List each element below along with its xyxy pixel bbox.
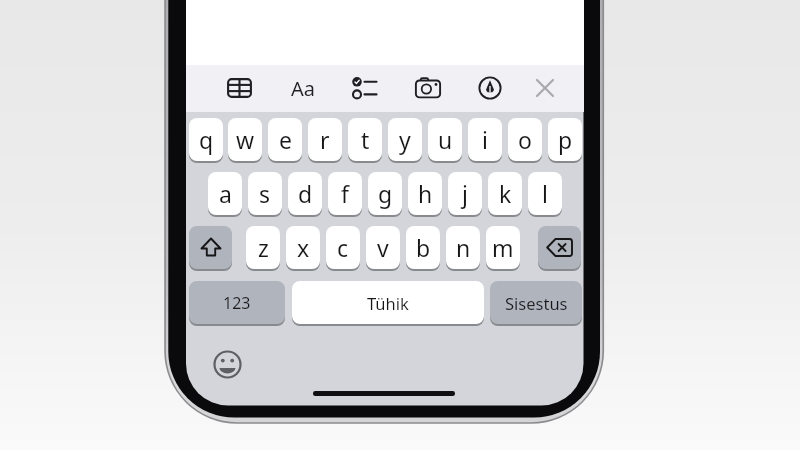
button[interactable]: l: [528, 172, 562, 215]
staticText: c: [337, 232, 349, 263]
button[interactable]: [474, 72, 506, 104]
staticText: Tühik: [367, 292, 409, 314]
staticText: Sisestus: [505, 292, 568, 314]
button[interactable]: [213, 350, 242, 379]
button[interactable]: d: [288, 172, 322, 215]
button[interactable]: k: [488, 172, 522, 215]
button[interactable]: [412, 72, 444, 104]
button[interactable]: [529, 72, 561, 104]
staticText: Aa: [291, 75, 315, 102]
staticText: g: [378, 178, 393, 209]
button[interactable]: y: [388, 118, 422, 161]
staticText: q: [199, 124, 214, 155]
button[interactable]: n: [446, 226, 480, 269]
staticText: s: [259, 178, 271, 209]
staticText: x: [297, 232, 310, 263]
staticText: j: [462, 178, 468, 209]
staticText: w: [236, 124, 255, 155]
staticText: t: [361, 124, 370, 155]
staticText: r: [320, 124, 330, 155]
button[interactable]: t: [348, 118, 382, 161]
button[interactable]: p: [548, 118, 582, 161]
button[interactable]: Sisestus: [490, 281, 582, 324]
staticText: p: [558, 124, 573, 155]
staticText: f: [341, 178, 349, 209]
button[interactable]: a: [208, 172, 242, 215]
button[interactable]: Tühik: [292, 281, 484, 324]
staticText: n: [456, 232, 471, 263]
staticText: m: [492, 232, 514, 263]
staticText: 123: [223, 292, 251, 314]
staticText: z: [258, 232, 269, 263]
button[interactable]: [538, 226, 581, 269]
button[interactable]: h: [408, 172, 442, 215]
button[interactable]: j: [448, 172, 482, 215]
button[interactable]: o: [508, 118, 542, 161]
staticText: u: [438, 124, 453, 155]
staticText: v: [377, 232, 389, 263]
staticText: d: [298, 178, 313, 209]
button[interactable]: 123: [189, 281, 285, 324]
staticText: y: [399, 124, 411, 155]
button[interactable]: [189, 226, 232, 269]
button[interactable]: q: [189, 118, 223, 161]
button[interactable]: s: [248, 172, 282, 215]
staticText: i: [482, 124, 488, 155]
button[interactable]: x: [286, 226, 320, 269]
staticText: b: [416, 232, 431, 263]
button[interactable]: w: [228, 118, 262, 161]
button[interactable]: f: [328, 172, 362, 215]
button[interactable]: g: [368, 172, 402, 215]
button[interactable]: e: [268, 118, 302, 161]
button[interactable]: [223, 72, 255, 104]
staticText: h: [418, 178, 433, 209]
button[interactable]: z: [246, 226, 280, 269]
button[interactable]: u: [428, 118, 462, 161]
staticText: a: [219, 178, 232, 209]
staticText: k: [499, 178, 512, 209]
staticText: l: [542, 178, 548, 209]
staticText: e: [279, 124, 292, 155]
button[interactable]: b: [406, 226, 440, 269]
staticText: o: [518, 124, 532, 155]
button[interactable]: Aa: [287, 72, 319, 104]
button[interactable]: [348, 72, 380, 104]
button[interactable]: r: [308, 118, 342, 161]
button[interactable]: m: [486, 226, 520, 269]
button[interactable]: i: [468, 118, 502, 161]
button[interactable]: v: [366, 226, 400, 269]
button[interactable]: c: [326, 226, 360, 269]
